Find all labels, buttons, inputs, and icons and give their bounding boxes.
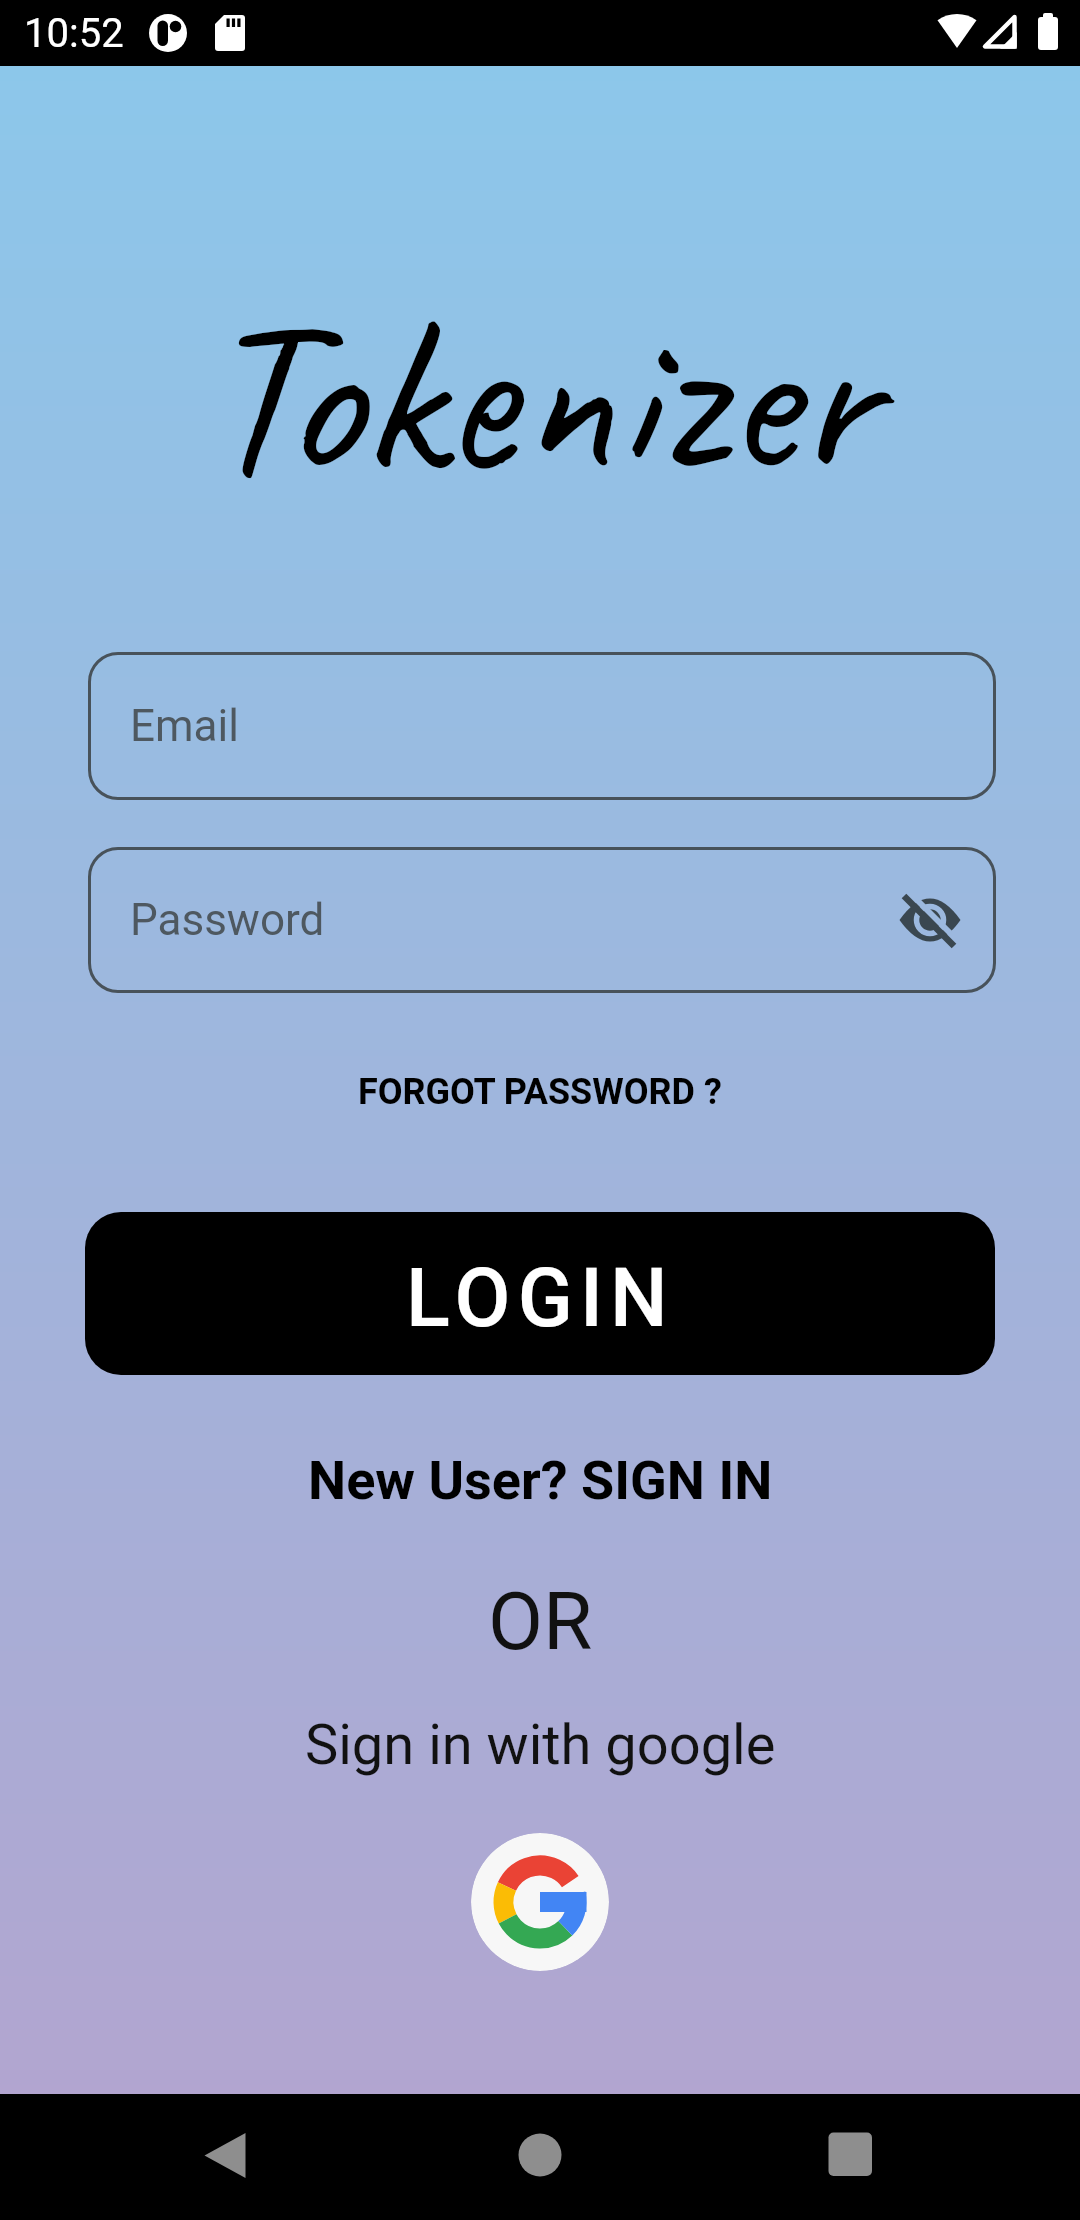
button[interactable]: [471, 1833, 609, 1971]
button[interactable]: [896, 886, 964, 954]
staticText: Tokenizer: [201, 256, 875, 534]
staticText: FORGOT PASSWORD ?: [358, 1071, 722, 1113]
staticText: Sign in with google: [305, 1712, 776, 1778]
button[interactable]: [810, 2114, 890, 2194]
button[interactable]: Password: [88, 847, 996, 993]
button[interactable]: FORGOT PASSWORD ?: [358, 1071, 722, 1113]
button[interactable]: Email: [88, 652, 996, 800]
button[interactable]: [185, 2115, 265, 2195]
button[interactable]: New User? SIGN IN: [308, 1449, 773, 1512]
staticText: New User? SIGN IN: [308, 1449, 773, 1512]
button[interactable]: [500, 2115, 580, 2195]
button[interactable]: Sign in with google: [305, 1712, 776, 1778]
staticText: 10:52: [24, 10, 124, 57]
staticText: Email: [130, 700, 239, 752]
staticText: Password: [130, 894, 325, 946]
staticText: OR: [488, 1575, 593, 1667]
staticText: LOGIN: [406, 1251, 675, 1346]
button[interactable]: LOGIN: [85, 1212, 995, 1375]
